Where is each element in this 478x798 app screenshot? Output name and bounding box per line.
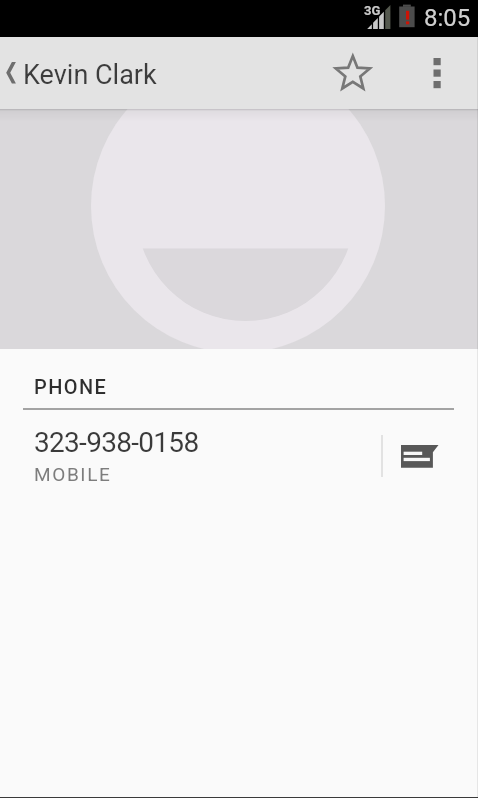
button[interactable]: 323-938-0158 [0,410,381,482]
staticText: Kevin Clark [23,59,157,91]
staticText: PHONE [34,375,108,398]
button[interactable]: Send message [383,410,478,482]
staticText: 323-938-0158 [34,426,199,459]
staticText: MOBILE [34,463,112,482]
staticText: 8:05 [424,4,471,32]
staticText: 3G [364,3,381,18]
button[interactable]: Add to favorites [322,37,382,109]
button[interactable]: Kevin Clark [0,37,177,109]
button[interactable]: More options [412,37,460,109]
